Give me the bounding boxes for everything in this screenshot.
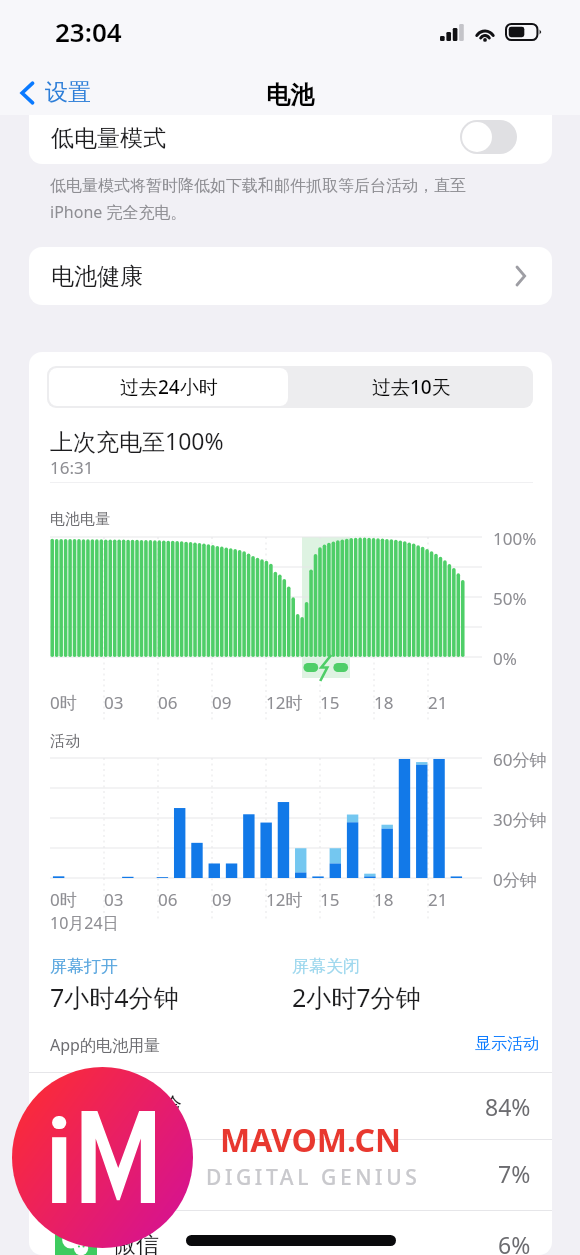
staticText: 50% <box>493 587 527 610</box>
staticText: 吧 <box>113 1159 136 1188</box>
button[interactable]: 过去24小时 <box>49 368 288 406</box>
staticText: 21 <box>428 888 448 911</box>
button[interactable]: 大探险 <box>29 1073 552 1139</box>
staticText: 18 <box>374 691 394 714</box>
staticText: 低电量模式将暂时降低如下载和邮件抓取等后台活动，直至 iPhone 完全充电。 <box>50 176 466 222</box>
staticText: 大探险 <box>113 1092 182 1121</box>
staticText: 低电量模式 <box>51 124 166 153</box>
staticText: 电池 <box>266 80 314 110</box>
staticText: 微信 <box>113 1230 159 1255</box>
staticText: 过去24小时 <box>120 374 218 400</box>
staticText: 10月24日 <box>50 912 119 934</box>
staticText: 设置 <box>45 78 91 107</box>
button[interactable]: 电池健康 <box>29 247 552 305</box>
staticText: 0时 <box>50 888 77 911</box>
staticText: 0时 <box>50 691 77 714</box>
button[interactable]: 低电量模式 <box>29 115 552 164</box>
staticText: 电池健康 <box>51 262 143 291</box>
staticText: 30分钟 <box>493 808 547 831</box>
staticText: 21 <box>428 691 448 714</box>
staticText: 屏幕关闭 <box>292 956 360 977</box>
staticText: 电池电量 <box>50 510 110 529</box>
staticText: 09 <box>212 888 232 911</box>
staticText: DIGITAL GENIUS <box>206 1163 421 1192</box>
button[interactable]: Low Power Mode toggle <box>460 120 517 154</box>
staticText: 7小时4分钟 <box>50 980 179 1014</box>
staticText: 23:04 <box>55 14 122 49</box>
staticText: 60分钟 <box>493 748 547 771</box>
staticText: 0分钟 <box>493 868 537 891</box>
staticText: 03 <box>104 691 124 714</box>
staticText: 过去10天 <box>372 374 451 400</box>
staticText: MAVOM.CN <box>220 1118 401 1162</box>
staticText: 2小时7分钟 <box>292 980 421 1014</box>
button[interactable]: 显示活动 <box>469 1028 545 1060</box>
staticText: 15 <box>320 691 340 714</box>
button[interactable]: 过去10天 <box>290 366 533 408</box>
staticText: 屏幕打开 <box>50 956 118 977</box>
staticText: 06 <box>158 888 178 911</box>
staticText: 15 <box>320 888 340 911</box>
button[interactable]: 设置 <box>14 73 97 112</box>
staticText: 12时 <box>266 888 303 911</box>
button[interactable]: 微信 <box>29 1211 552 1255</box>
button[interactable]: 吧 <box>29 1140 552 1206</box>
staticText: 0% <box>493 647 517 670</box>
staticText: 上次充电至100% <box>50 425 224 456</box>
staticText: 7% <box>498 1158 531 1189</box>
staticText: 03 <box>104 888 124 911</box>
staticText: 09 <box>212 691 232 714</box>
staticText: 18 <box>374 888 394 911</box>
staticText: 16:31 <box>50 456 94 479</box>
staticText: 显示活动 <box>475 1034 539 1054</box>
staticText: 06 <box>158 691 178 714</box>
staticText: 6% <box>498 1229 531 1255</box>
staticText: 12时 <box>266 691 303 714</box>
staticText: 84% <box>485 1091 531 1122</box>
staticText: 活动 <box>50 732 80 751</box>
staticText: 100% <box>493 527 537 550</box>
staticText: App的电池用量 <box>50 1034 160 1056</box>
